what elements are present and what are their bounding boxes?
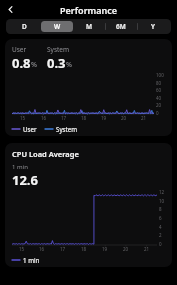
- staticText: 19: [101, 115, 107, 121]
- button[interactable]: User: [5, 39, 172, 136]
- staticText: 18: [81, 246, 87, 252]
- staticText: System: [56, 125, 78, 133]
- staticText: %: [66, 60, 72, 70]
- staticText: CPU Load Average: [12, 149, 79, 159]
- staticText: %: [31, 60, 37, 70]
- staticText: 6: [159, 215, 162, 221]
- staticText: 20: [156, 102, 162, 108]
- button[interactable]: CPU Load Average: [5, 143, 172, 267]
- staticText: 1 min: [12, 163, 28, 171]
- staticText: System: [47, 45, 70, 54]
- button[interactable]: 6M: [105, 21, 137, 32]
- staticText: M: [86, 22, 93, 31]
- button[interactable]: W: [41, 21, 73, 32]
- staticText: 17: [61, 115, 67, 121]
- staticText: 20: [121, 115, 127, 121]
- staticText: 8: [159, 206, 162, 212]
- staticText: 0: [159, 241, 162, 247]
- button[interactable]: Back: [2, 1, 19, 18]
- button[interactable]: System: [45, 125, 78, 133]
- staticText: 16: [39, 246, 45, 252]
- staticText: D: [22, 22, 27, 31]
- staticText: Performance: [60, 4, 117, 16]
- staticText: 0.8: [12, 54, 31, 72]
- staticText: 18: [81, 115, 87, 121]
- staticText: 10: [159, 198, 165, 204]
- staticText: 17: [60, 246, 66, 252]
- staticText: 12: [159, 189, 165, 195]
- staticText: 0.3: [47, 54, 66, 72]
- staticText: 100: [156, 72, 164, 78]
- staticText: 20: [123, 246, 129, 252]
- button[interactable]: M: [73, 21, 105, 32]
- staticText: W: [54, 22, 61, 31]
- staticText: 0: [156, 110, 159, 116]
- staticText: 6M: [116, 22, 126, 31]
- staticText: 4: [159, 224, 162, 230]
- staticText: 2: [159, 232, 162, 238]
- staticText: 16: [41, 115, 47, 121]
- staticText: 19: [102, 246, 108, 252]
- staticText: 21: [141, 115, 147, 121]
- staticText: User: [23, 125, 37, 133]
- staticText: 15: [19, 246, 25, 252]
- button[interactable]: D: [8, 21, 41, 32]
- staticText: 1 min: [23, 256, 40, 264]
- staticText: 21: [144, 246, 150, 252]
- button[interactable]: User: [12, 125, 37, 133]
- staticText: 15: [20, 115, 26, 121]
- button[interactable]: 1 min: [12, 256, 40, 264]
- staticText: 12.6: [12, 171, 38, 189]
- staticText: Y: [151, 22, 155, 31]
- button[interactable]: Y: [137, 21, 169, 32]
- staticText: User: [12, 45, 27, 54]
- staticText: 40: [156, 95, 162, 101]
- staticText: 60: [156, 87, 162, 93]
- staticText: 80: [156, 80, 162, 86]
